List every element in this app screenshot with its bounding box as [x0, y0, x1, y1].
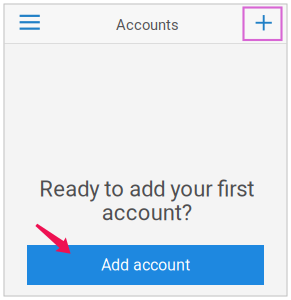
staticText: Ready to add your first account? — [39, 176, 254, 226]
button[interactable]: Add account — [27, 245, 264, 285]
button[interactable]: Add account — [243, 7, 281, 40]
button[interactable]: Menu — [4, 5, 70, 43]
staticText: Add account — [101, 256, 190, 274]
staticText: Accounts — [116, 16, 179, 34]
